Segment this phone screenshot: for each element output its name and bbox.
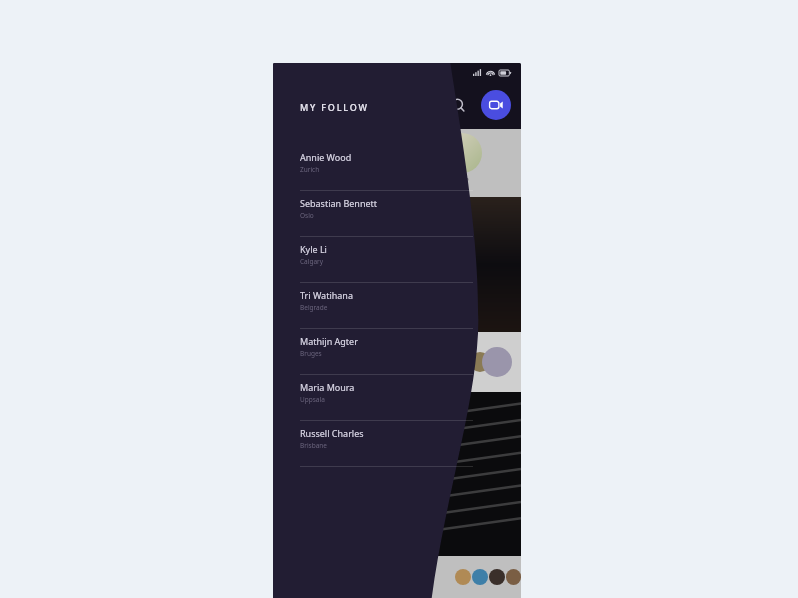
button[interactable]: Tom Voss — [331, 133, 377, 190]
staticText: Russell Charles — [300, 427, 364, 439]
button[interactable]: Tri Watihana — [273, 283, 521, 329]
staticText: Tri Watihana — [300, 289, 353, 301]
button[interactable]: Jane — [439, 133, 485, 190]
staticText: Maria Moura — [300, 381, 355, 393]
staticText: Mathijn Agter — [300, 335, 358, 347]
staticText: Brisbane — [300, 441, 328, 450]
button[interactable]: Sebastian Bennett — [273, 191, 521, 237]
staticText: Zurich — [300, 165, 320, 174]
button[interactable]: Lisa Ray — [277, 133, 323, 190]
button[interactable]: Kyle Li — [273, 237, 521, 283]
staticText: Annie Wood — [300, 151, 352, 163]
staticText: Belgrade — [300, 303, 328, 312]
button[interactable] — [273, 392, 521, 556]
staticText: Jane — [456, 175, 469, 183]
button[interactable]: Search — [443, 90, 473, 120]
staticText: Sebastian Bennett — [300, 197, 378, 209]
staticText: Kyle Li — [300, 243, 327, 255]
staticText: Uppsala — [300, 395, 325, 404]
button[interactable] — [273, 197, 521, 332]
staticText: Calgary — [300, 257, 324, 266]
button[interactable]: Russell Charles — [273, 421, 521, 467]
button[interactable]: Start video call — [481, 90, 511, 120]
staticText: Oslo — [300, 211, 314, 220]
staticText: MY FOLLOW — [300, 101, 369, 113]
button[interactable]: Mathijn Agter — [273, 329, 521, 375]
staticText: Bruges — [300, 349, 322, 358]
button[interactable]: Annie Wood — [273, 145, 521, 191]
button[interactable]: Maria Moura — [273, 375, 521, 421]
